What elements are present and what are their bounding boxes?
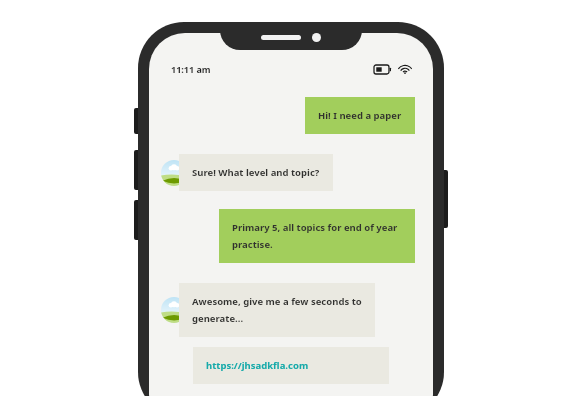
other: Contact avatar xyxy=(161,297,187,323)
button[interactable]: Awesome, give me a few seconds to genera… xyxy=(179,283,375,337)
staticText: Sure! What level and topic? xyxy=(192,166,320,179)
staticText: 11:11 am xyxy=(171,63,211,75)
staticText: Primary 5, all topics for end of year pr… xyxy=(232,221,402,251)
button[interactable]: https://jhsadkfla.com xyxy=(193,347,389,384)
button[interactable]: Sure! What level and topic? xyxy=(179,154,333,191)
other: Contact avatar xyxy=(161,160,187,186)
button[interactable]: Primary 5, all topics for end of year pr… xyxy=(219,209,415,263)
staticText: Hi! I need a paper xyxy=(318,109,402,122)
staticText: https://jhsadkfla.com xyxy=(206,359,309,372)
staticText: Awesome, give me a few seconds to genera… xyxy=(192,295,362,325)
button[interactable]: Hi! I need a paper xyxy=(305,97,415,134)
